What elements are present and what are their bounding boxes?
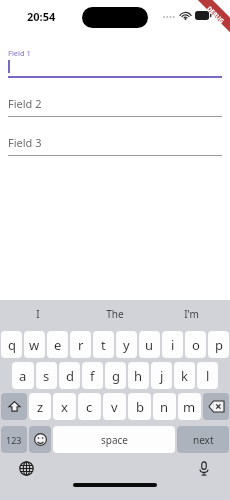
button[interactable]: space xyxy=(53,426,175,453)
staticText: next xyxy=(193,433,214,447)
staticText: space xyxy=(101,433,128,447)
button[interactable]: 123 xyxy=(1,426,27,453)
staticText: d xyxy=(66,367,74,385)
button[interactable]: g xyxy=(105,362,126,389)
button[interactable]: w xyxy=(24,331,45,358)
staticText: g xyxy=(112,367,120,385)
staticText: a xyxy=(19,367,27,385)
button[interactable]: v xyxy=(103,393,126,420)
staticText: f xyxy=(90,367,95,385)
staticText: v xyxy=(111,398,118,416)
button[interactable]: I'm xyxy=(153,300,230,328)
button[interactable]: r xyxy=(70,331,91,358)
staticText: p xyxy=(215,336,223,354)
staticText: y xyxy=(123,336,130,354)
staticText: The xyxy=(106,307,124,321)
button[interactable]: c xyxy=(78,393,101,420)
staticText: w xyxy=(29,336,40,354)
button[interactable]: i xyxy=(162,331,183,358)
button[interactable]: k xyxy=(174,362,195,389)
staticText: 123 xyxy=(6,434,22,446)
button[interactable]: o xyxy=(185,331,206,358)
staticText: x xyxy=(61,398,68,416)
staticText: n xyxy=(160,398,169,416)
staticText: Field 1 xyxy=(8,48,31,58)
button[interactable]: n xyxy=(153,393,176,420)
button[interactable]: d xyxy=(59,362,80,389)
button[interactable]: Field 2 xyxy=(0,96,230,117)
staticText: h xyxy=(134,367,143,385)
staticText: k xyxy=(181,367,188,385)
button[interactable]: m xyxy=(178,393,201,420)
staticText: I xyxy=(36,307,40,321)
button[interactable]: e xyxy=(47,331,68,358)
staticText: i xyxy=(171,336,175,354)
button[interactable]: h xyxy=(128,362,149,389)
staticText: Field 2 xyxy=(8,96,42,111)
button[interactable]: x xyxy=(53,393,76,420)
button[interactable]: q xyxy=(1,331,22,358)
button[interactable]: Emoji xyxy=(29,426,51,453)
staticText: r xyxy=(78,336,84,354)
button[interactable]: l xyxy=(197,362,218,389)
button[interactable]: b xyxy=(128,393,151,420)
staticText: o xyxy=(192,336,200,354)
staticText: t xyxy=(101,336,106,354)
button[interactable]: The xyxy=(76,300,153,328)
staticText: I'm xyxy=(184,307,199,321)
button[interactable]: t xyxy=(93,331,114,358)
button[interactable]: Field 3 xyxy=(0,135,230,156)
button[interactable]: f xyxy=(82,362,103,389)
staticText: l xyxy=(206,367,210,385)
staticText: s xyxy=(43,367,50,385)
button[interactable]: I xyxy=(0,300,76,328)
staticText: e xyxy=(54,336,62,354)
staticText: m xyxy=(183,398,196,416)
button[interactable]: Delete xyxy=(203,393,229,420)
button[interactable]: p xyxy=(208,331,229,358)
button[interactable]: s xyxy=(36,362,57,389)
button[interactable]: u xyxy=(139,331,160,358)
staticText: j xyxy=(160,367,164,385)
staticText: Field 3 xyxy=(8,135,42,150)
staticText: DEBUG xyxy=(205,5,226,25)
staticText: 20:54 xyxy=(27,9,56,24)
button[interactable]: j xyxy=(151,362,172,389)
button[interactable]: next xyxy=(177,426,229,453)
button[interactable]: a xyxy=(12,362,34,389)
button[interactable]: y xyxy=(116,331,137,358)
button[interactable]: Dictation xyxy=(196,460,212,476)
staticText: q xyxy=(8,336,16,354)
staticText: c xyxy=(86,398,93,416)
button[interactable]: Field 1 xyxy=(0,48,230,78)
button[interactable]: Change keyboard xyxy=(18,460,34,476)
staticText: z xyxy=(37,398,44,416)
staticText: b xyxy=(136,398,144,416)
button[interactable]: z xyxy=(29,393,51,420)
staticText: u xyxy=(145,336,154,354)
button[interactable]: Shift xyxy=(1,393,27,420)
